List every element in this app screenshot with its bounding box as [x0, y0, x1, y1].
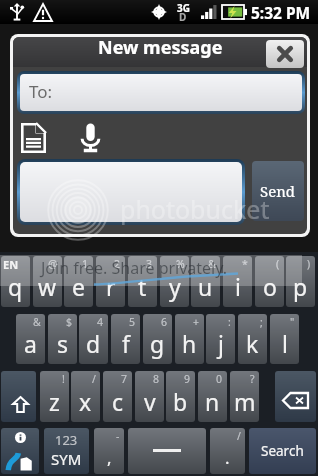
- staticText: d: [86, 328, 101, 359]
- button[interactable]: Search: [249, 428, 316, 474]
- staticText: 5:32 PM: [251, 2, 311, 23]
- staticText: u: [198, 271, 213, 302]
- button[interactable]: $: [48, 314, 77, 364]
- button[interactable]: @: [33, 256, 62, 307]
- staticText: s: [57, 328, 69, 359]
- staticText: 1: [82, 257, 89, 271]
- button[interactable]: 2: [96, 256, 125, 307]
- staticText: &: [208, 257, 216, 271]
- staticText: x: [79, 386, 92, 417]
- staticText: &: [33, 315, 41, 329]
- staticText: $: [66, 315, 73, 329]
- staticText: !: [62, 372, 65, 386]
- button[interactable]: !: [40, 371, 69, 422]
- button[interactable]: 1: [64, 256, 93, 307]
- button[interactable]: ?: [230, 371, 259, 422]
- staticText: To:: [29, 80, 53, 103]
- button[interactable]: ": [270, 314, 299, 364]
- button[interactable]: ): [286, 256, 315, 307]
- button[interactable]: 5: [111, 314, 140, 364]
- staticText: 123: [55, 431, 78, 449]
- button[interactable]: 9: [166, 371, 195, 422]
- button[interactable]: -: [94, 428, 124, 474]
- button[interactable]: To:: [20, 74, 302, 111]
- staticText: /: [237, 429, 241, 443]
- button[interactable]: Attach file: [13, 120, 53, 156]
- staticText: e: [72, 271, 85, 302]
- staticText: .: [225, 446, 230, 469]
- staticText: z: [49, 386, 60, 417]
- staticText: t: [138, 271, 147, 302]
- button[interactable]: /: [71, 371, 100, 422]
- staticText: 2: [114, 257, 121, 271]
- button[interactable]: 8: [135, 371, 164, 422]
- staticText: y: [169, 271, 181, 302]
- button[interactable]: 3: [128, 256, 157, 307]
- staticText: 0: [216, 372, 223, 386]
- other: Backspace: [283, 393, 308, 408]
- button[interactable]: /: [210, 428, 245, 474]
- staticText: *: [242, 257, 248, 271]
- staticText: j: [218, 328, 224, 359]
- button[interactable]: 123: [44, 428, 89, 474]
- staticText: l: [282, 328, 288, 359]
- staticText: %: [176, 257, 185, 271]
- staticText: photobucket: [120, 192, 270, 226]
- button[interactable]: Voice message: [71, 119, 110, 155]
- button[interactable]: [20, 162, 242, 222]
- staticText: SYM: [51, 449, 82, 469]
- staticText: f: [122, 328, 130, 359]
- staticText: g: [150, 328, 165, 359]
- staticText: :: [228, 315, 231, 329]
- button[interactable]: 4: [79, 314, 108, 364]
- staticText: ,: [107, 446, 112, 469]
- button[interactable]: &: [16, 314, 45, 364]
- button[interactable]: ;: [238, 314, 267, 364]
- button[interactable]: Close: [266, 40, 304, 68]
- staticText: c: [112, 386, 124, 417]
- button[interactable]: 6: [143, 314, 172, 364]
- button[interactable]: %: [160, 256, 189, 307]
- button[interactable]: 7: [103, 371, 132, 422]
- staticText: 3G: [177, 1, 190, 15]
- staticText: ): [307, 257, 311, 271]
- other: Space: [153, 449, 181, 453]
- staticText: w: [38, 271, 57, 302]
- button[interactable]: Space: [128, 428, 206, 474]
- staticText: Search: [261, 442, 304, 460]
- button[interactable]: Send: [252, 161, 304, 221]
- staticText: n: [205, 386, 220, 417]
- staticText: i: [235, 271, 241, 302]
- button[interactable]: +: [175, 314, 204, 364]
- staticText: @: [48, 257, 58, 271]
- button[interactable]: (: [255, 256, 284, 307]
- staticText: ?: [250, 372, 255, 386]
- other: Input method: [1, 428, 39, 474]
- staticText: h: [182, 328, 197, 359]
- staticText: /: [92, 372, 96, 386]
- staticText: ": [290, 315, 295, 329]
- button[interactable]: Shift: [1, 371, 36, 422]
- staticText: D: [179, 10, 187, 24]
- staticText: +: [193, 315, 200, 329]
- staticText: ;: [260, 315, 263, 329]
- button[interactable]: Input method: [1, 428, 39, 474]
- button[interactable]: 0: [198, 371, 227, 422]
- staticText: 6: [161, 315, 168, 329]
- button[interactable]: *: [223, 256, 252, 307]
- staticText: Send: [260, 181, 296, 201]
- button[interactable]: Backspace: [275, 371, 316, 422]
- button[interactable]: :: [206, 314, 235, 364]
- staticText: 9: [184, 372, 191, 386]
- button[interactable]: EN: [1, 256, 30, 307]
- staticText: New message: [98, 37, 223, 60]
- staticText: o: [263, 271, 277, 302]
- staticText: k: [246, 328, 259, 359]
- button[interactable]: &: [191, 256, 220, 307]
- staticText: v: [144, 386, 156, 417]
- staticText: 3: [146, 257, 153, 271]
- staticText: 4: [97, 315, 104, 329]
- staticText: p: [293, 271, 308, 302]
- staticText: 5: [129, 315, 136, 329]
- staticText: (: [276, 257, 280, 271]
